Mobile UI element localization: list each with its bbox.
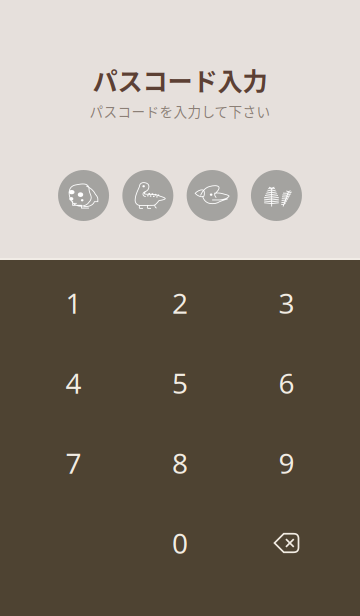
button[interactable]: 1 <box>20 263 126 343</box>
button[interactable]: 0 <box>127 503 233 583</box>
staticText: 6 <box>278 364 294 402</box>
button[interactable]: Delete <box>233 503 339 583</box>
staticText: 0 <box>172 524 188 562</box>
staticText: 5 <box>172 364 188 402</box>
button[interactable]: 6 <box>233 343 339 423</box>
button[interactable]: 8 <box>127 423 233 503</box>
staticText: 7 <box>65 444 81 482</box>
button[interactable]: 7 <box>20 423 126 503</box>
staticText: パスコード入力 <box>92 62 267 98</box>
button[interactable]: 9 <box>233 423 339 503</box>
staticText: 4 <box>65 364 81 402</box>
staticText: 8 <box>172 444 188 482</box>
button[interactable]: 2 <box>127 263 233 343</box>
staticText: 9 <box>278 444 294 482</box>
button[interactable]: 3 <box>233 263 339 343</box>
staticText: 1 <box>65 284 81 322</box>
staticText: パスコードを入力して下さい <box>89 101 270 121</box>
button[interactable]: 4 <box>20 343 126 423</box>
button[interactable]: 5 <box>127 343 233 423</box>
staticText: 2 <box>172 284 188 322</box>
staticText: 3 <box>278 284 294 322</box>
